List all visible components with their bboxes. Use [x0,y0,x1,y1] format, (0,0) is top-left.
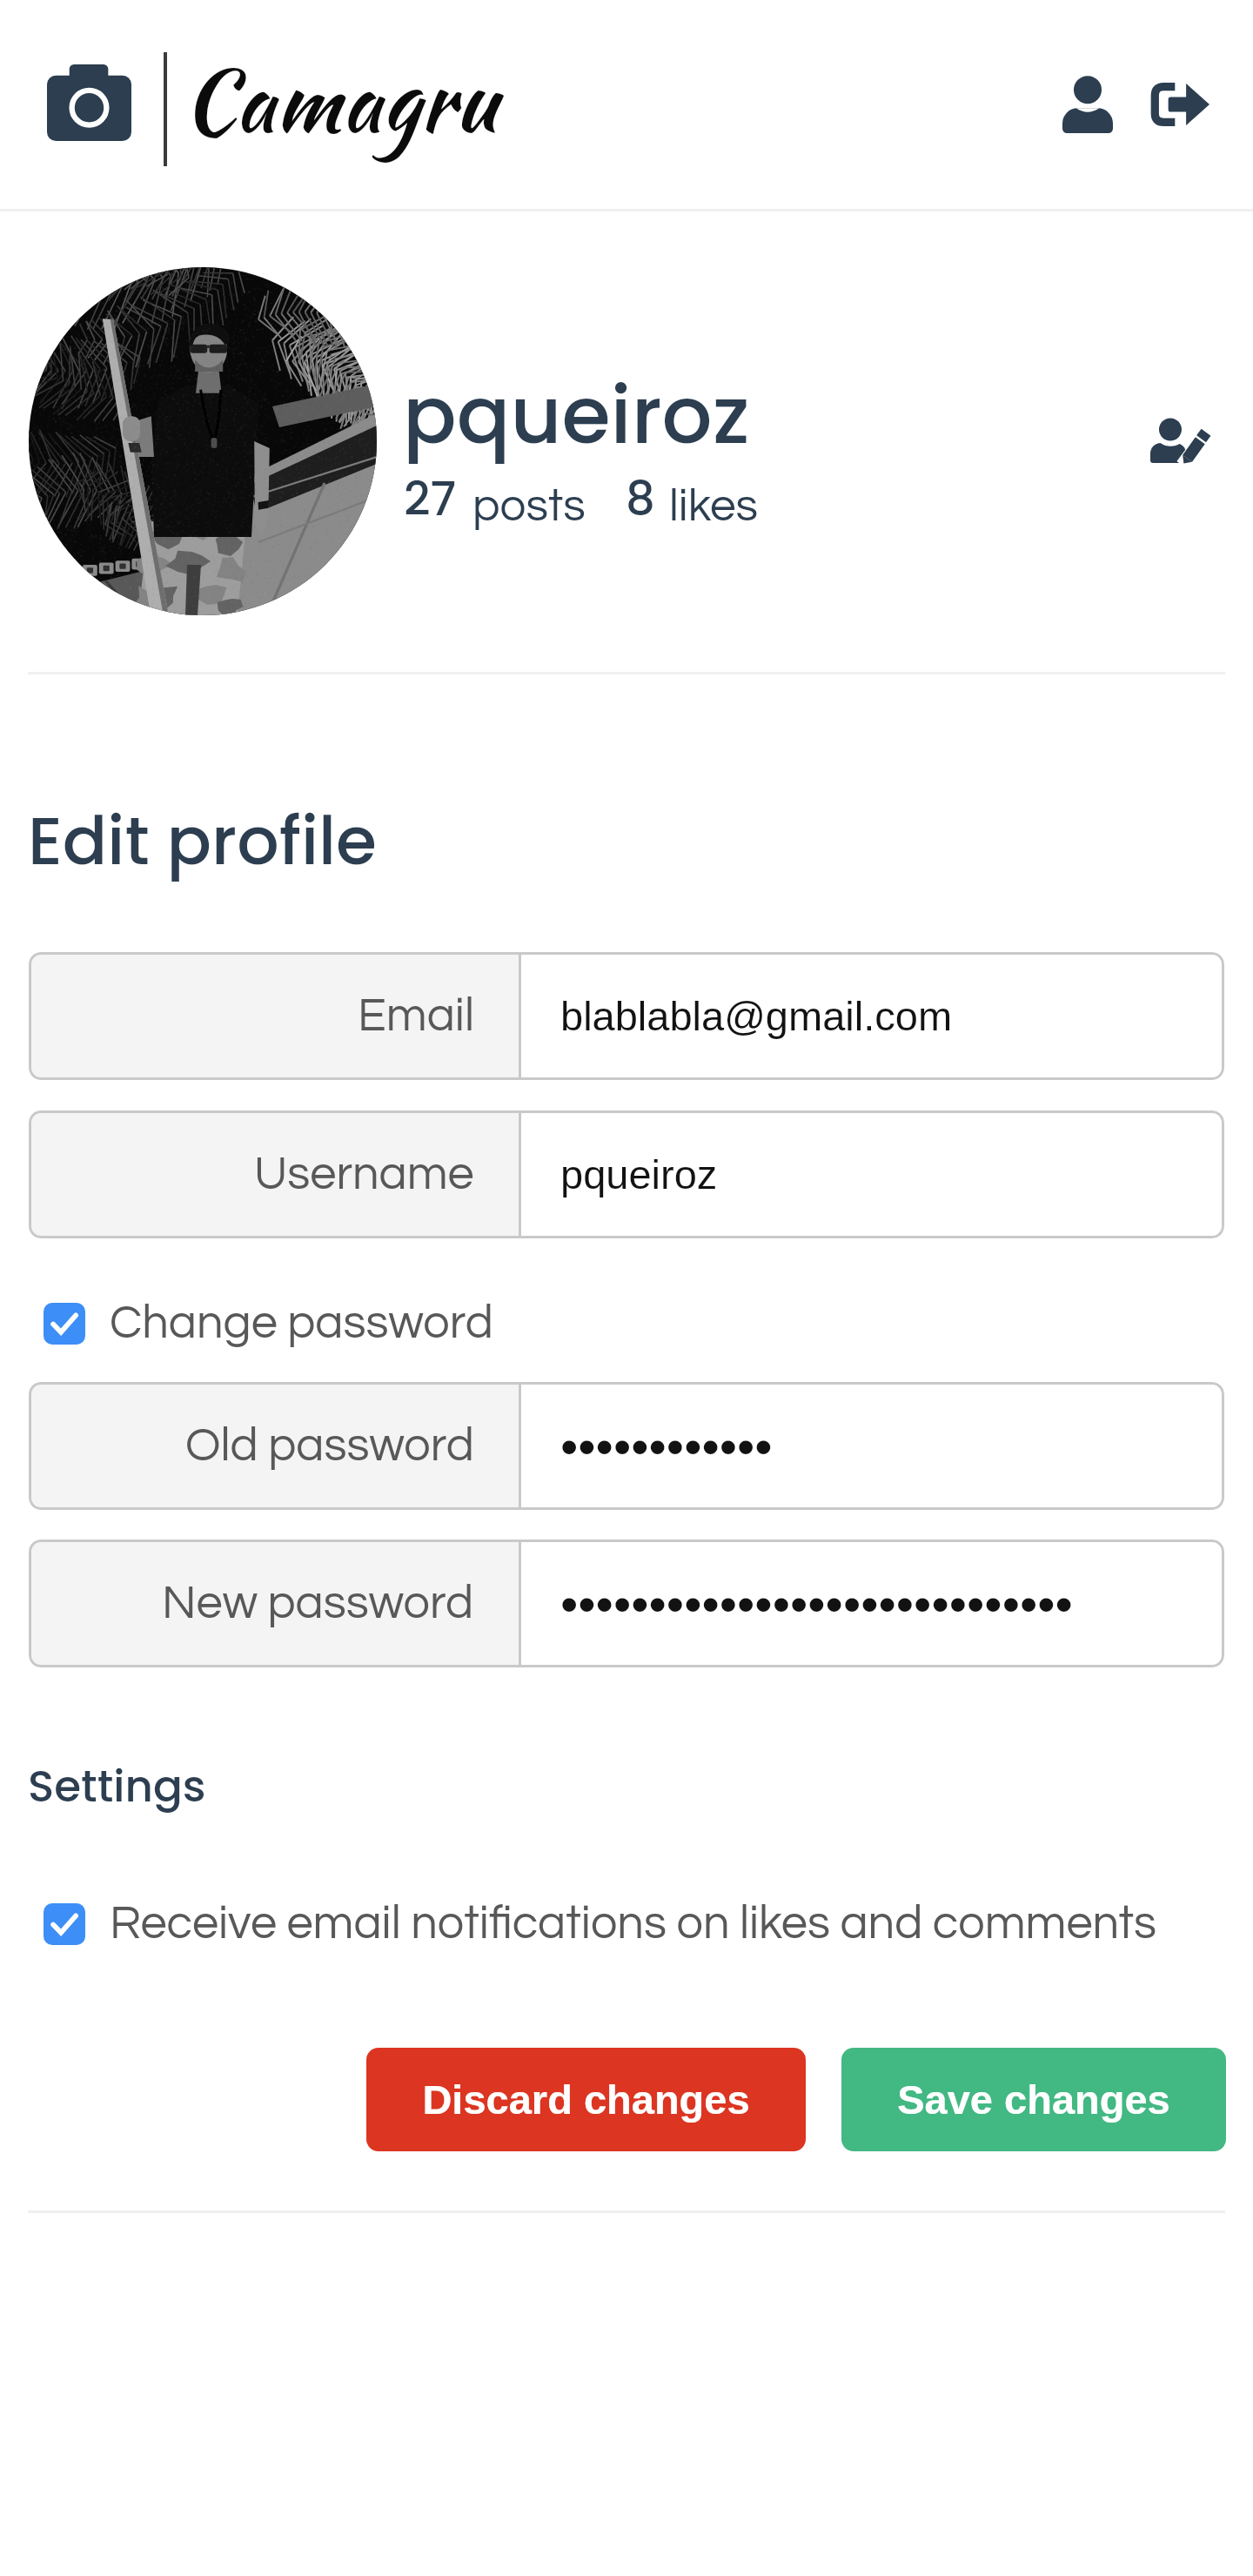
staticText: likes [669,483,759,531]
button[interactable]: Edit profile [1131,393,1225,487]
staticText: Camagru [183,38,498,164]
staticText: Receive email notifications on likes and… [110,1900,1157,1949]
staticText: Change password [110,1299,493,1348]
staticText: Email [358,992,474,1041]
staticText: Edit profile [28,795,377,887]
staticText: •••••••••••• [560,1418,773,1474]
staticText: New password [162,1580,474,1628]
staticText: ••••••••••••••••••••••••••••• [560,1575,1073,1632]
button[interactable]: Username [29,1110,1224,1238]
staticText: posts [472,483,586,531]
button[interactable]: Receive email notifications on likes and… [44,1900,1157,1949]
staticText: Settings [28,1756,206,1817]
staticText: 8 [626,466,655,531]
staticText: blablabla@gmail.com [560,993,953,1039]
button[interactable]: Old password [29,1382,1224,1510]
staticText: Save changes [897,2076,1170,2123]
button[interactable]: Email [29,952,1224,1080]
staticText: Old password [185,1422,474,1471]
button[interactable]: New password [29,1540,1224,1667]
button[interactable]: Change password [44,1299,493,1348]
button[interactable]: Profile [1039,56,1136,153]
staticText: 27 [404,466,457,531]
button[interactable]: Discard changes [366,2048,806,2151]
button[interactable]: Camagru home [39,54,138,151]
staticText: Discard changes [422,2076,750,2123]
staticText: pqueiroz [560,1151,718,1197]
staticText: Username [254,1150,474,1199]
staticText: pqueiroz [403,359,750,470]
button[interactable]: Save changes [841,2048,1226,2151]
button[interactable]: Log out [1133,56,1230,153]
